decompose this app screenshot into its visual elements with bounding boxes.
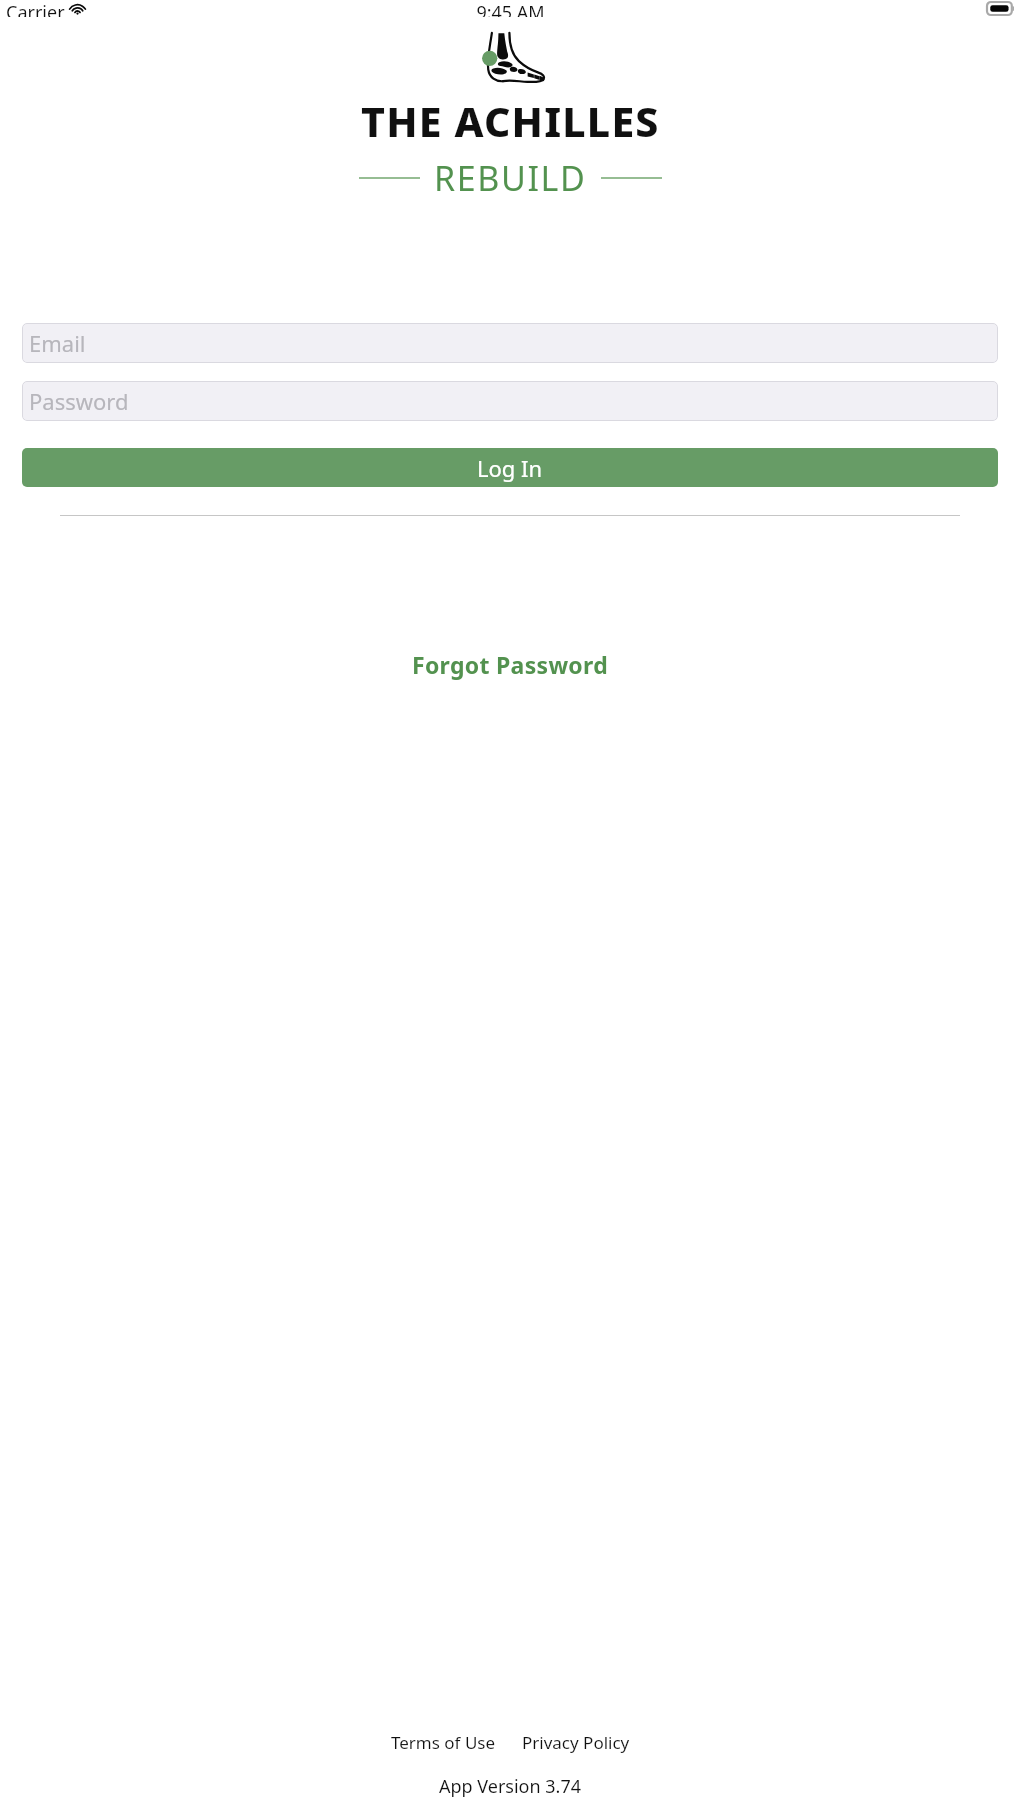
button[interactable]: Email (22, 323, 998, 363)
button[interactable]: Forgot Password (400, 643, 620, 686)
staticText: Carrier (6, 0, 65, 17)
button[interactable]: Privacy Policy (516, 1727, 636, 1758)
staticText: THE ACHILLES (361, 93, 660, 149)
staticText: REBUILD (434, 155, 587, 201)
button[interactable]: Terms of Use (385, 1727, 502, 1758)
staticText: Privacy Policy (522, 1731, 630, 1754)
staticText: Email (29, 328, 86, 358)
staticText: Log In (477, 453, 543, 483)
staticText: App Version 3.74 (439, 1774, 582, 1799)
staticText: Forgot Password (412, 649, 608, 680)
staticText: Password (29, 386, 129, 416)
staticText: 9:45 AM (476, 0, 545, 17)
button[interactable]: Log In (22, 448, 998, 487)
staticText: Terms of Use (391, 1731, 496, 1754)
button[interactable]: Password (22, 381, 998, 421)
